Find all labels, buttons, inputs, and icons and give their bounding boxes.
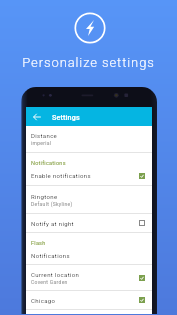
staticText: Chicago [31,297,56,304]
button[interactable]: Notify at night [26,214,152,232]
staticText: Settings [52,113,80,121]
staticText: Personalize settings [0,55,177,70]
staticText: Current location [31,271,80,278]
button[interactable]: Ringtone [26,186,152,213]
staticText: Default (Skyline) [31,201,73,207]
staticText: Flash [31,240,46,246]
staticText: Notifications [31,252,70,259]
button[interactable]: Current location [139,275,145,281]
staticText: Covent Garden [31,279,68,285]
staticText: Distance [31,132,58,139]
button[interactable]: Enable notifications [26,166,152,185]
button[interactable]: Notify at night [139,220,145,226]
button[interactable]: Enable notifications [139,173,145,179]
button[interactable]: Chicago [139,297,145,303]
staticText: Notifications [31,160,66,166]
button[interactable]: Notifications [26,246,152,264]
staticText: Enable notifications [31,172,91,179]
button[interactable]: Current location [26,265,152,290]
staticText: Notify at night [31,220,74,227]
button[interactable]: Distance [26,126,152,152]
button[interactable]: Chicago [26,291,152,309]
staticText: imperial [31,140,52,146]
button[interactable]: Back [26,107,47,126]
staticText: Ringtone [31,193,58,200]
